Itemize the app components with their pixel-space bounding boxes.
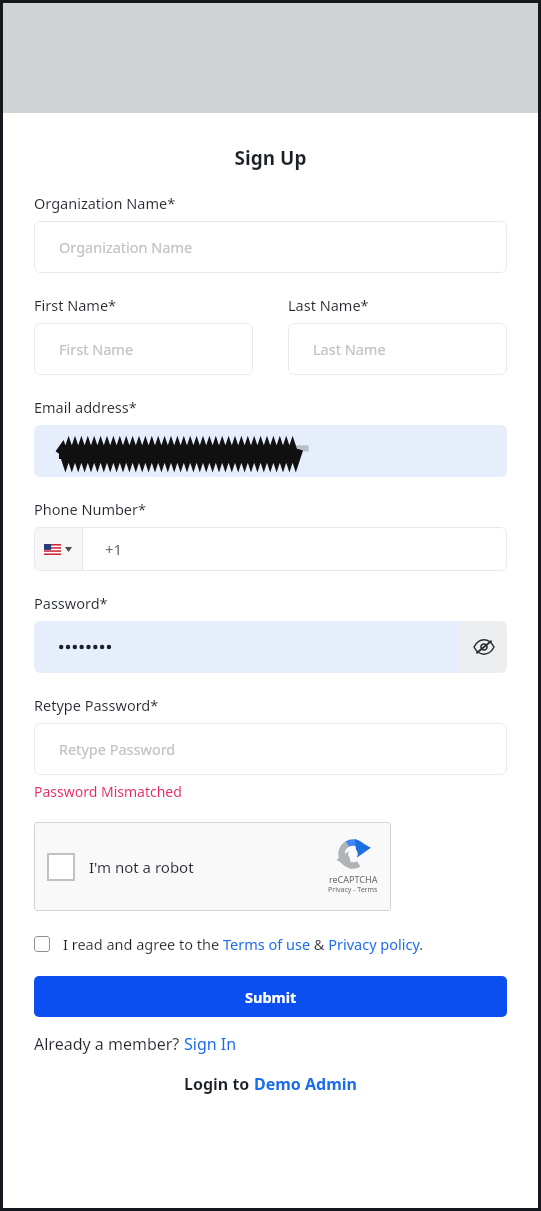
button[interactable]: I'm not a robot checkbox (47, 853, 75, 881)
staticText: Sign In (184, 1033, 237, 1055)
staticText: reCAPTCHA (329, 873, 378, 885)
staticText: Organization Name (59, 237, 193, 257)
staticText: Password Mismatched (34, 782, 182, 801)
staticText: Last Name (313, 339, 386, 359)
staticText: Password* (34, 593, 108, 613)
staticText: Organization Name* (34, 193, 176, 213)
button[interactable]: Sign In (184, 1033, 237, 1055)
button[interactable]: I'm not a robot checkbox (34, 822, 391, 911)
button[interactable]: Select country code (34, 527, 82, 571)
button[interactable]: +1 (83, 527, 507, 571)
staticText: First Name (59, 339, 134, 359)
staticText: Already a member? (34, 1033, 184, 1055)
staticText: I read and agree to the Terms of use & P… (63, 934, 424, 954)
staticText: Privacy - Terms (328, 885, 378, 895)
button[interactable] (34, 425, 507, 477)
staticText: I'm not a robot (89, 857, 194, 877)
staticText: Submit (245, 987, 297, 1007)
button[interactable]: Retype Password (34, 723, 507, 775)
button[interactable]: Show password (460, 621, 507, 673)
staticText: Login to (184, 1073, 254, 1095)
staticText: +1 (105, 539, 123, 559)
button[interactable]: Submit (34, 976, 507, 1017)
button[interactable]: Organization Name (34, 221, 507, 273)
staticText: Sign Up (3, 145, 538, 171)
button[interactable]: I read and agree to the Terms of use & P… (34, 934, 507, 954)
staticText: First Name* (34, 295, 117, 315)
button[interactable] (34, 621, 460, 673)
staticText: Phone Number* (34, 499, 147, 519)
button[interactable]: Last Name (288, 323, 507, 375)
staticText: Last Name* (288, 295, 369, 315)
button[interactable]: First Name (34, 323, 253, 375)
staticText: Demo Admin (254, 1073, 357, 1095)
staticText: Retype Password* (34, 695, 159, 715)
button[interactable]: Demo Admin (254, 1073, 357, 1095)
staticText: Email address* (34, 397, 137, 417)
staticText: Retype Password (59, 739, 176, 759)
